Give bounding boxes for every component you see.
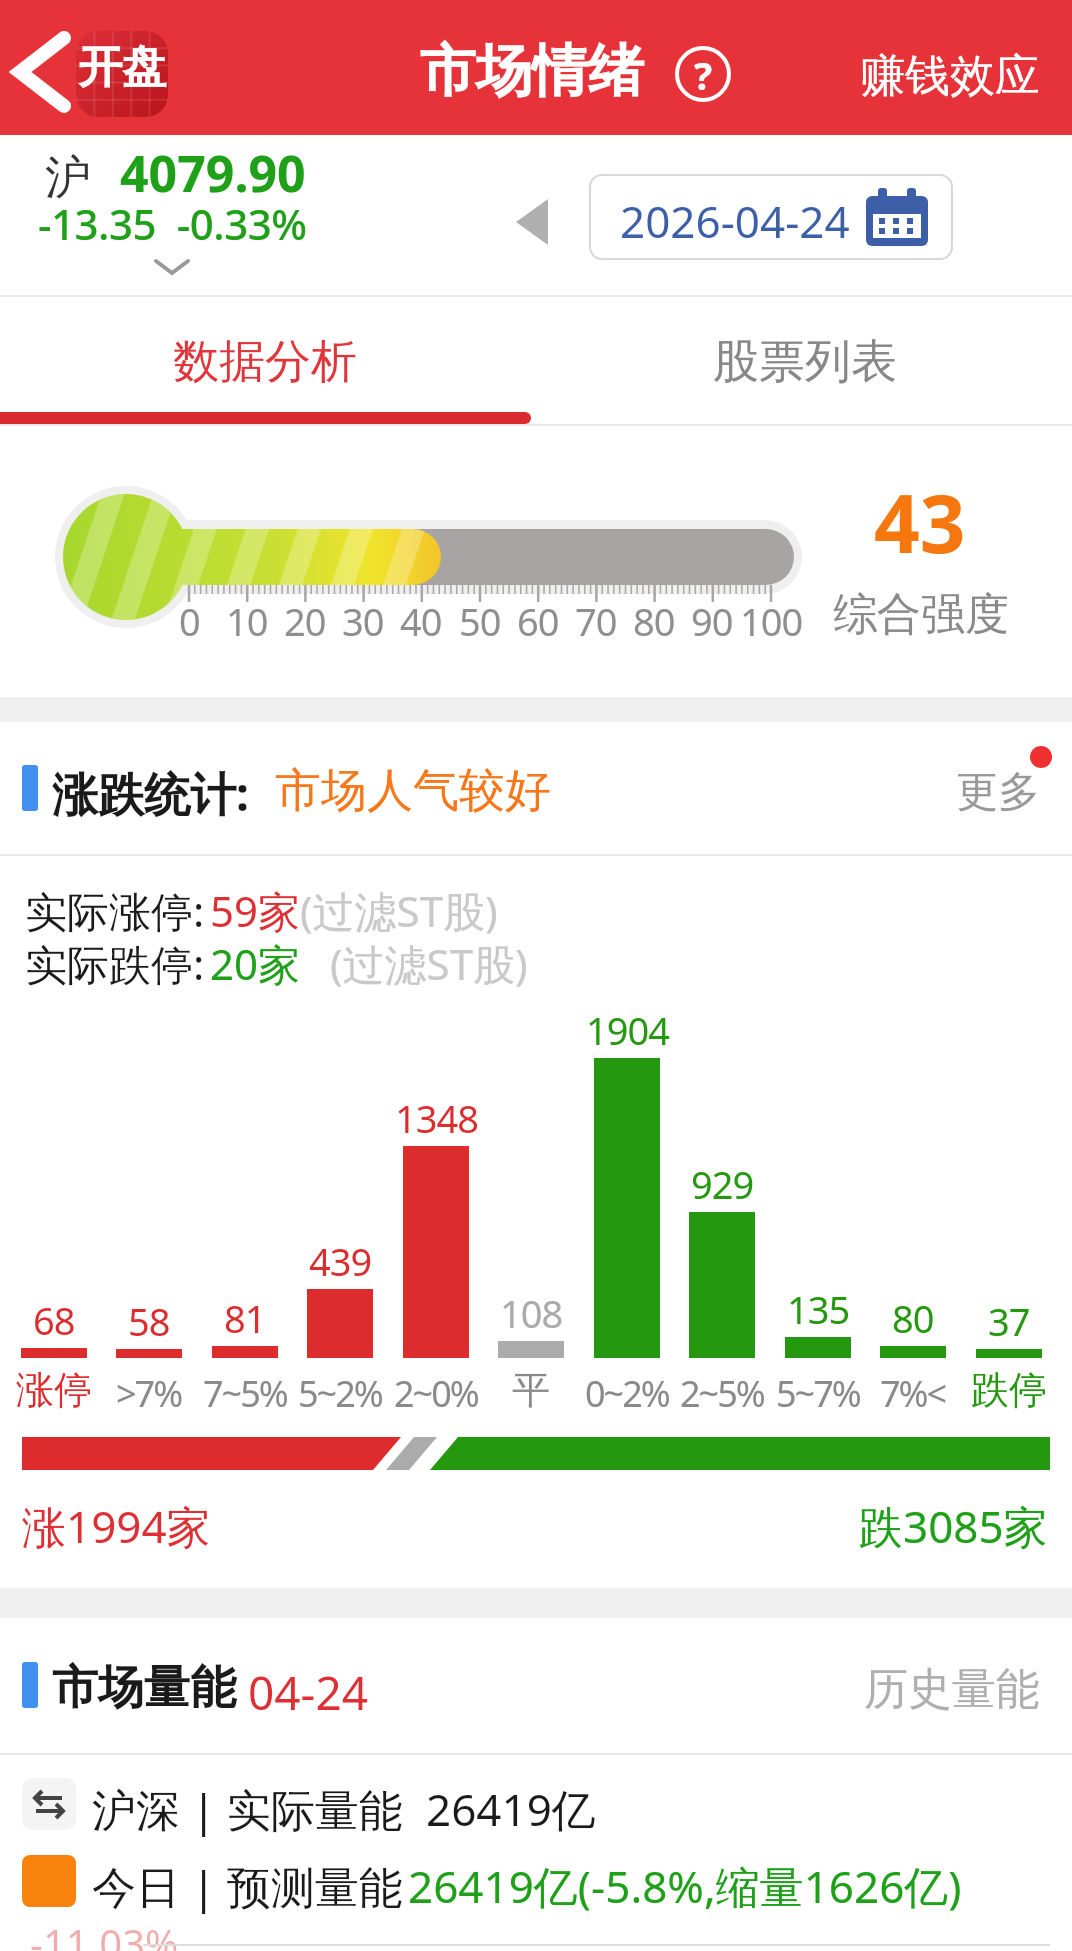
staticText: 60 <box>517 595 559 647</box>
button[interactable]: 2026-04-24 <box>590 175 952 259</box>
staticText: 100 <box>740 595 803 647</box>
button[interactable] <box>536 295 1072 426</box>
staticText: 59家 <box>210 882 301 939</box>
button[interactable]: 沪深 | 实际量能 26419亿 <box>0 1765 1072 1845</box>
staticText: 81 <box>224 1292 266 1344</box>
staticText: 平 <box>512 1366 550 1414</box>
staticText: 70 <box>575 595 617 647</box>
staticText: 实际涨停: <box>25 882 205 939</box>
staticText: 108 <box>500 1287 563 1339</box>
staticText: 历史量能 <box>864 1662 1040 1717</box>
staticText: (过滤ST股) <box>330 935 528 992</box>
staticText: 50 <box>459 595 501 647</box>
button[interactable] <box>674 45 732 103</box>
staticText: 涨停 <box>16 1366 92 1414</box>
staticText: 今日 | 预测量能 <box>92 1856 404 1916</box>
staticText: 5~7% <box>776 1369 860 1418</box>
staticText: 40 <box>400 595 442 647</box>
staticText: 58 <box>128 1295 170 1347</box>
staticText: ? <box>694 49 713 101</box>
button[interactable]: 今日 | 预测量能 <box>0 1845 1072 1923</box>
button[interactable] <box>0 295 536 426</box>
button[interactable] <box>4 30 76 116</box>
staticText: 市场人气较好 <box>275 762 551 820</box>
staticText: 7~5% <box>203 1369 287 1418</box>
staticText: 37 <box>988 1295 1030 1347</box>
staticText: 2026-04-24 <box>620 191 850 251</box>
staticText: 10 <box>226 595 268 647</box>
staticText: 68 <box>33 1294 75 1346</box>
staticText: 涨1994家 <box>22 1496 211 1556</box>
staticText: 1348 <box>395 1092 478 1144</box>
staticText: 4079.90 <box>120 139 306 207</box>
staticText: 90 <box>691 595 733 647</box>
staticText: 股票列表 <box>713 333 897 391</box>
staticText: 0~2% <box>585 1369 669 1418</box>
staticText: 20家 <box>210 935 301 992</box>
staticText: -11.03% <box>30 1916 179 1951</box>
staticText: 数据分析 <box>173 333 357 391</box>
staticText: 135 <box>787 1283 850 1335</box>
staticText: 市场情绪 <box>420 36 644 107</box>
staticText: 沪深 | 实际量能 26419亿 <box>92 1779 596 1839</box>
staticText: 2~0% <box>394 1369 478 1418</box>
staticText: 涨跌统计: <box>52 762 249 825</box>
staticText: 沪 <box>45 149 91 207</box>
staticText: 开盘 <box>78 40 166 95</box>
staticText: -13.35 -0.33% <box>38 195 307 252</box>
staticText: 跌3085家 <box>859 1496 1048 1556</box>
staticText: 26419亿(-5.8%,缩量1626亿) <box>408 1856 962 1916</box>
staticText: 80 <box>633 595 675 647</box>
staticText: 跌停 <box>971 1366 1047 1414</box>
staticText: 实际跌停: <box>25 935 205 992</box>
staticText: 2~5% <box>680 1369 764 1418</box>
button[interactable]: 沪 <box>0 135 400 285</box>
staticText: 43 <box>874 467 966 576</box>
staticText: 04-24 <box>248 1661 369 1724</box>
button[interactable]: 更多 <box>0 722 500 775</box>
staticText: 20 <box>284 595 326 647</box>
button[interactable] <box>76 31 168 117</box>
staticText: 929 <box>691 1158 754 1210</box>
staticText: 80 <box>892 1292 934 1344</box>
button[interactable] <box>514 199 550 245</box>
staticText: 5~2% <box>298 1369 382 1418</box>
staticText: 0 <box>179 595 200 647</box>
staticText: 更多 <box>956 766 1040 819</box>
staticText: 市场量能 <box>52 1659 236 1717</box>
staticText: 1904 <box>586 1004 669 1056</box>
staticText: 30 <box>342 595 384 647</box>
staticText: (过滤ST股) <box>300 882 498 939</box>
staticText: 439 <box>309 1235 372 1287</box>
button[interactable]: 历史量能 <box>0 1618 500 1673</box>
staticText: 赚钱效应 <box>860 48 1040 105</box>
button[interactable]: 赚钱效应 <box>0 0 500 57</box>
staticText: 7%< <box>880 1369 946 1418</box>
staticText: >7% <box>116 1369 182 1418</box>
staticText: 综合强度 <box>833 587 1009 642</box>
